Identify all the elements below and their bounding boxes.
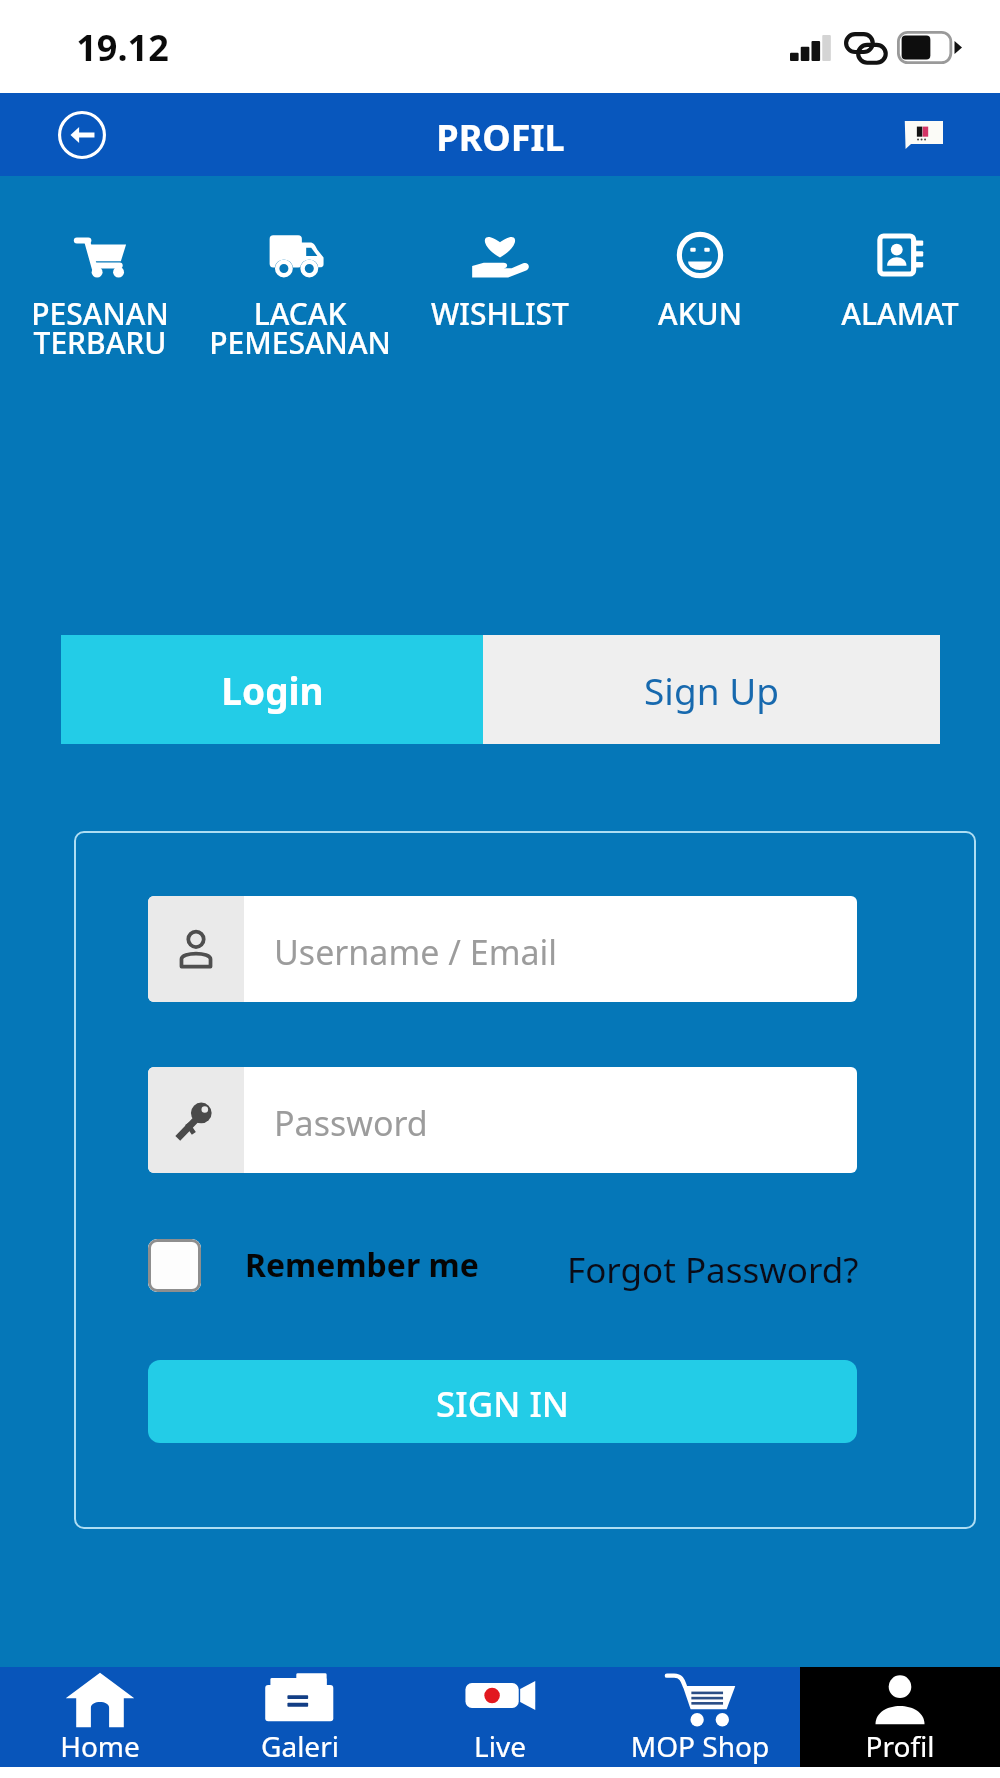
button[interactable]: Profil <box>800 1667 1000 1767</box>
button[interactable]: Password <box>148 1067 857 1173</box>
staticText: SIGN IN <box>436 1380 569 1428</box>
staticText: MOP Shop <box>600 1727 800 1765</box>
staticText: Remember me <box>245 1243 479 1287</box>
staticText: ALAMAT <box>800 293 1000 334</box>
staticText: Password <box>274 1100 428 1146</box>
button[interactable]: AKUN <box>600 225 800 334</box>
staticText: PROFIL <box>436 113 565 162</box>
staticText: LACAK PEMESANAN <box>200 293 400 363</box>
button[interactable]: Galeri <box>200 1667 400 1767</box>
button[interactable]: Chat <box>894 106 952 164</box>
button[interactable]: ALAMAT <box>800 225 1000 334</box>
staticText: PESANAN TERBARU <box>0 293 200 363</box>
button[interactable]: LACAK PEMESANAN <box>200 225 400 363</box>
button[interactable]: Login <box>61 635 483 744</box>
button[interactable]: Forgot Password? <box>567 1246 859 1294</box>
staticText: Home <box>0 1727 200 1765</box>
staticText: WISHLIST <box>400 293 600 334</box>
button[interactable]: Back <box>50 103 114 167</box>
staticText: AKUN <box>600 293 800 334</box>
button[interactable]: Home <box>0 1667 200 1767</box>
button[interactable]: PESANAN TERBARU <box>0 225 200 363</box>
button[interactable]: MOP Shop <box>600 1667 800 1767</box>
button[interactable]: Remember me checkbox <box>148 1239 201 1292</box>
staticText: 19.12 <box>76 23 169 72</box>
button[interactable]: Username / Email <box>148 896 857 1002</box>
button[interactable]: WISHLIST <box>400 225 600 334</box>
staticText: Galeri <box>200 1727 400 1765</box>
staticText: Profil <box>800 1727 1000 1765</box>
staticText: Username / Email <box>274 929 558 975</box>
button[interactable]: SIGN IN <box>148 1360 857 1443</box>
staticText: Sign Up <box>644 665 779 715</box>
staticText: Live <box>400 1727 600 1765</box>
staticText: Login <box>221 665 324 715</box>
button[interactable]: Live <box>400 1667 600 1767</box>
button[interactable]: Sign Up <box>483 635 940 744</box>
